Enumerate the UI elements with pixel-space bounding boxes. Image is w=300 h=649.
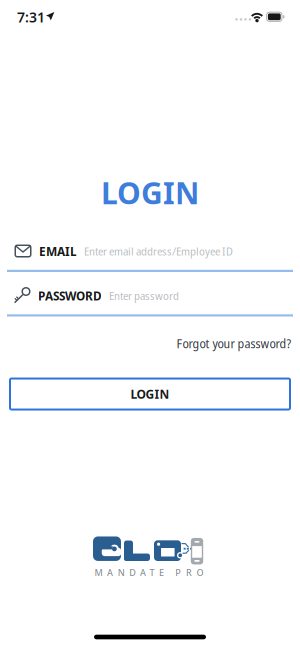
button[interactable]: Email bbox=[0, 241, 300, 272]
button[interactable]: LOGIN bbox=[9, 377, 291, 410]
button[interactable]: Forgot your password? bbox=[176, 335, 291, 352]
staticText: 7:31 bbox=[17, 7, 45, 27]
staticText: Enter email address/Employee ID bbox=[84, 243, 233, 259]
staticText: Enter password bbox=[109, 288, 179, 303]
staticText: LOGIN bbox=[130, 386, 169, 402]
staticText: LOGIN bbox=[101, 172, 199, 213]
button[interactable]: Password bbox=[0, 285, 300, 316]
staticText: EMAIL bbox=[39, 242, 77, 260]
staticText: Forgot your password? bbox=[176, 335, 291, 352]
staticText: PASSWORD bbox=[38, 287, 102, 304]
staticText: MANDATE PRO bbox=[94, 566, 203, 579]
